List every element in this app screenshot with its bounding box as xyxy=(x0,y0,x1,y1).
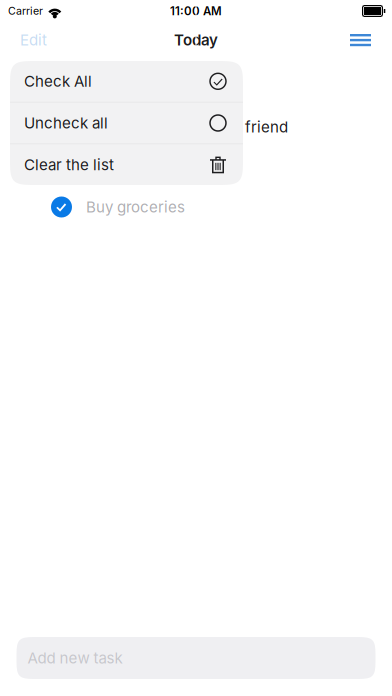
staticText: Edit xyxy=(20,31,47,49)
button[interactable]: Add new task xyxy=(16,637,375,679)
staticText: Uncheck all xyxy=(24,114,108,132)
button[interactable]: Uncheck all xyxy=(10,102,243,143)
staticText: 11:00 AM xyxy=(170,4,222,18)
button[interactable]: Check All xyxy=(10,61,243,102)
button[interactable]: Edit xyxy=(0,23,120,57)
button[interactable]: Menu xyxy=(272,23,392,57)
button[interactable]: Buy groceries xyxy=(0,167,392,247)
staticText: Today xyxy=(174,31,218,49)
staticText: Add new task xyxy=(27,649,122,667)
staticText: Carrier xyxy=(8,5,43,17)
staticText: Buy groceries xyxy=(86,198,185,216)
button[interactable]: Schedule a call with a friend xyxy=(0,87,392,167)
staticText: Check All xyxy=(24,72,92,90)
staticText: Clear the list xyxy=(24,156,114,174)
button[interactable]: Clear the list xyxy=(10,144,243,185)
staticText: Schedule a call with a friend xyxy=(86,118,288,136)
